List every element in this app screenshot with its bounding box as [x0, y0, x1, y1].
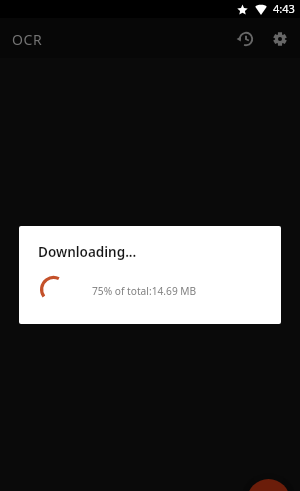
button[interactable]: Scan	[241, 473, 296, 491]
button[interactable]: Settings	[266, 25, 294, 53]
button[interactable]: History	[231, 25, 259, 53]
staticText: 4:43	[273, 1, 295, 16]
staticText: OCR	[12, 30, 43, 49]
staticText: 75% of total:14.69 MB	[92, 284, 197, 298]
staticText: Downloading...	[38, 243, 137, 261]
